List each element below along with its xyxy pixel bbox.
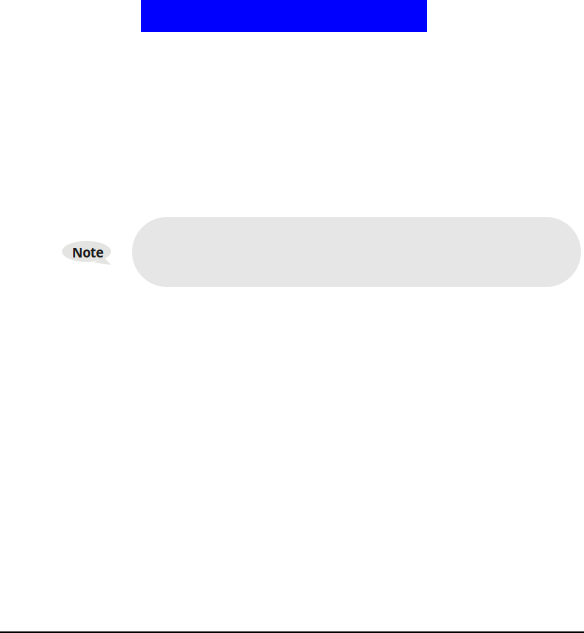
staticText: Note (72, 243, 104, 261)
